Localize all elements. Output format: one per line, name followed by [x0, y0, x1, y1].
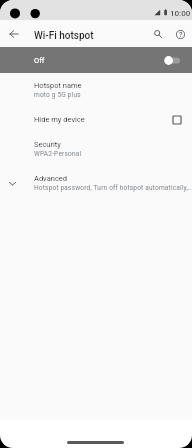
staticText: ? — [179, 31, 183, 39]
staticText: Hide my device — [34, 115, 85, 124]
button[interactable]: Advanced — [0, 169, 192, 197]
staticText: Wi-Fi hotspot — [34, 30, 94, 42]
button[interactable]: Navigate up — [3, 23, 25, 45]
button[interactable]: Search — [147, 23, 169, 45]
staticText: 10:00 — [170, 9, 191, 18]
button[interactable]: Off — [0, 47, 192, 73]
staticText: Hotspot name — [34, 81, 82, 90]
button[interactable]: Security — [0, 135, 192, 163]
button[interactable]: Hide my device — [0, 110, 192, 130]
staticText: WPA2-Personal — [34, 150, 82, 158]
staticText: Advanced — [34, 174, 68, 183]
staticText: Security — [34, 140, 61, 149]
button[interactable]: Hotspot name — [0, 76, 192, 104]
staticText: Off — [34, 56, 45, 65]
button[interactable]: Help — [169, 23, 191, 45]
staticText: moto g 5G plus — [34, 91, 81, 99]
staticText: Hotspot password, Turn off hotspot autom… — [34, 184, 192, 192]
